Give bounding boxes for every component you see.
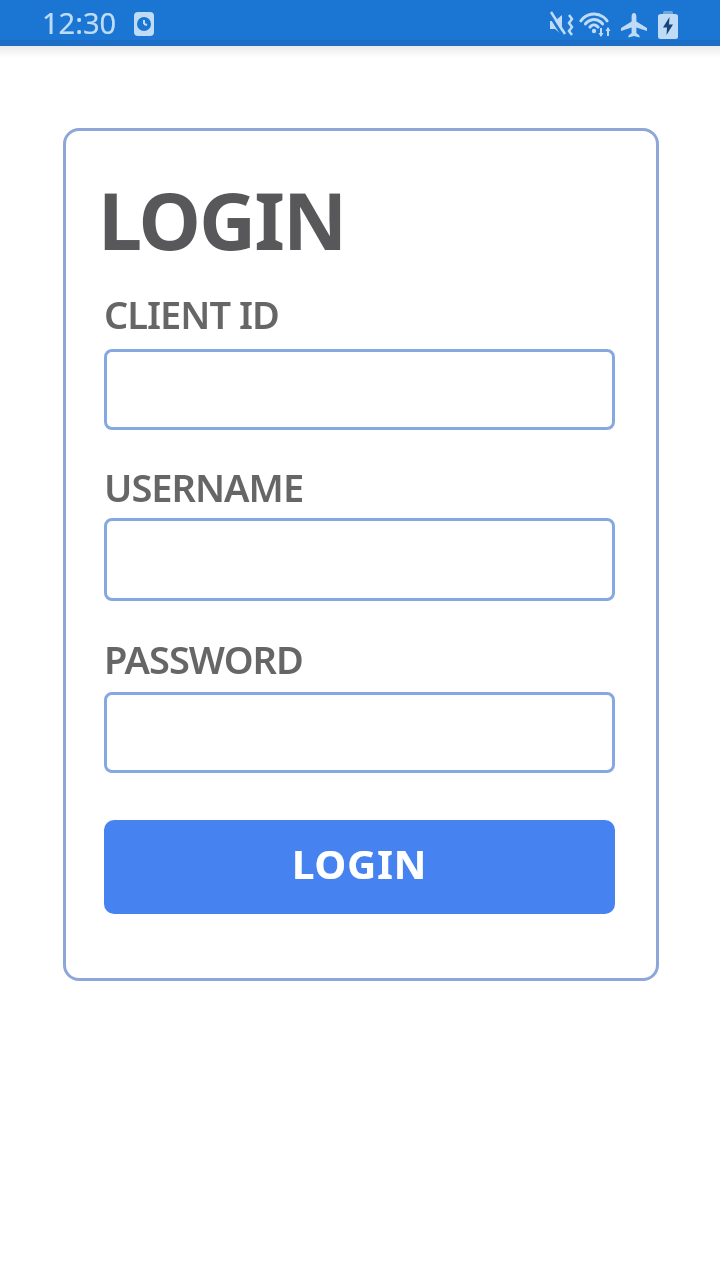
- staticText: PASSWORD: [104, 633, 303, 685]
- button[interactable]: [104, 349, 615, 430]
- staticText: USERNAME: [104, 461, 304, 513]
- staticText: LOGIN: [98, 166, 346, 274]
- button[interactable]: [104, 692, 615, 773]
- button[interactable]: LOGIN: [104, 820, 615, 914]
- staticText: 12:30: [42, 3, 117, 42]
- button[interactable]: [104, 518, 615, 601]
- staticText: CLIENT ID: [104, 288, 279, 340]
- staticText: LOGIN: [292, 836, 428, 890]
